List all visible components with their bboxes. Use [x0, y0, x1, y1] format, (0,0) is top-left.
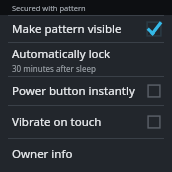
button[interactable]: Vibrate on touch, not checked	[0, 106, 172, 138]
staticText: Secured with pattern	[12, 3, 86, 13]
staticText: Power button instantly locks	[12, 83, 142, 99]
button[interactable]: Make pattern visible, checked	[0, 16, 172, 42]
staticText: Automatically lock	[12, 46, 111, 62]
button[interactable]: Power button instantly locks, not checke…	[0, 77, 172, 105]
button[interactable]: Owner info	[0, 139, 172, 169]
staticText: Owner info	[12, 146, 73, 162]
button[interactable]: Automatically lock	[0, 43, 172, 76]
staticText: 30 minutes after sleep	[12, 63, 96, 74]
staticText: Make pattern visible	[12, 21, 122, 37]
staticText: Vibrate on touch	[12, 114, 102, 130]
